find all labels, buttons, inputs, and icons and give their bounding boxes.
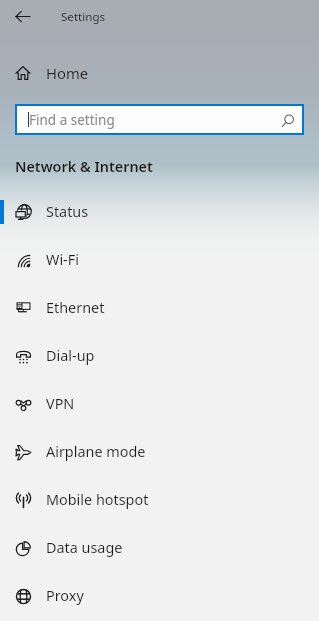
button[interactable]: Dial-up: [0, 332, 319, 380]
button[interactable]: Home: [0, 56, 319, 89]
staticText: VPN: [46, 394, 75, 414]
staticText: Ethernet: [46, 298, 105, 318]
button[interactable]: Ethernet: [0, 284, 319, 332]
staticText: Find a setting: [29, 111, 115, 129]
button[interactable]: Wi-Fi: [0, 236, 319, 284]
staticText: Network & Internet: [15, 157, 153, 177]
button[interactable]: Mobile hotspot: [0, 476, 319, 524]
staticText: Wi-Fi: [46, 250, 79, 270]
button[interactable]: Status: [0, 188, 319, 236]
button[interactable]: Back: [9, 3, 37, 29]
button[interactable]: VPN: [0, 380, 319, 428]
button[interactable]: Proxy: [0, 572, 319, 620]
staticText: Dial-up: [46, 346, 95, 366]
staticText: Airplane mode: [46, 442, 146, 462]
button[interactable]: Find a setting: [15, 104, 304, 135]
button[interactable]: Airplane mode: [0, 428, 319, 476]
staticText: Data usage: [46, 538, 123, 558]
staticText: Home: [46, 63, 89, 83]
staticText: Mobile hotspot: [46, 490, 149, 510]
button[interactable]: Data usage: [0, 524, 319, 572]
staticText: Proxy: [46, 586, 84, 606]
staticText: Status: [46, 202, 89, 222]
staticText: Settings: [61, 9, 106, 25]
